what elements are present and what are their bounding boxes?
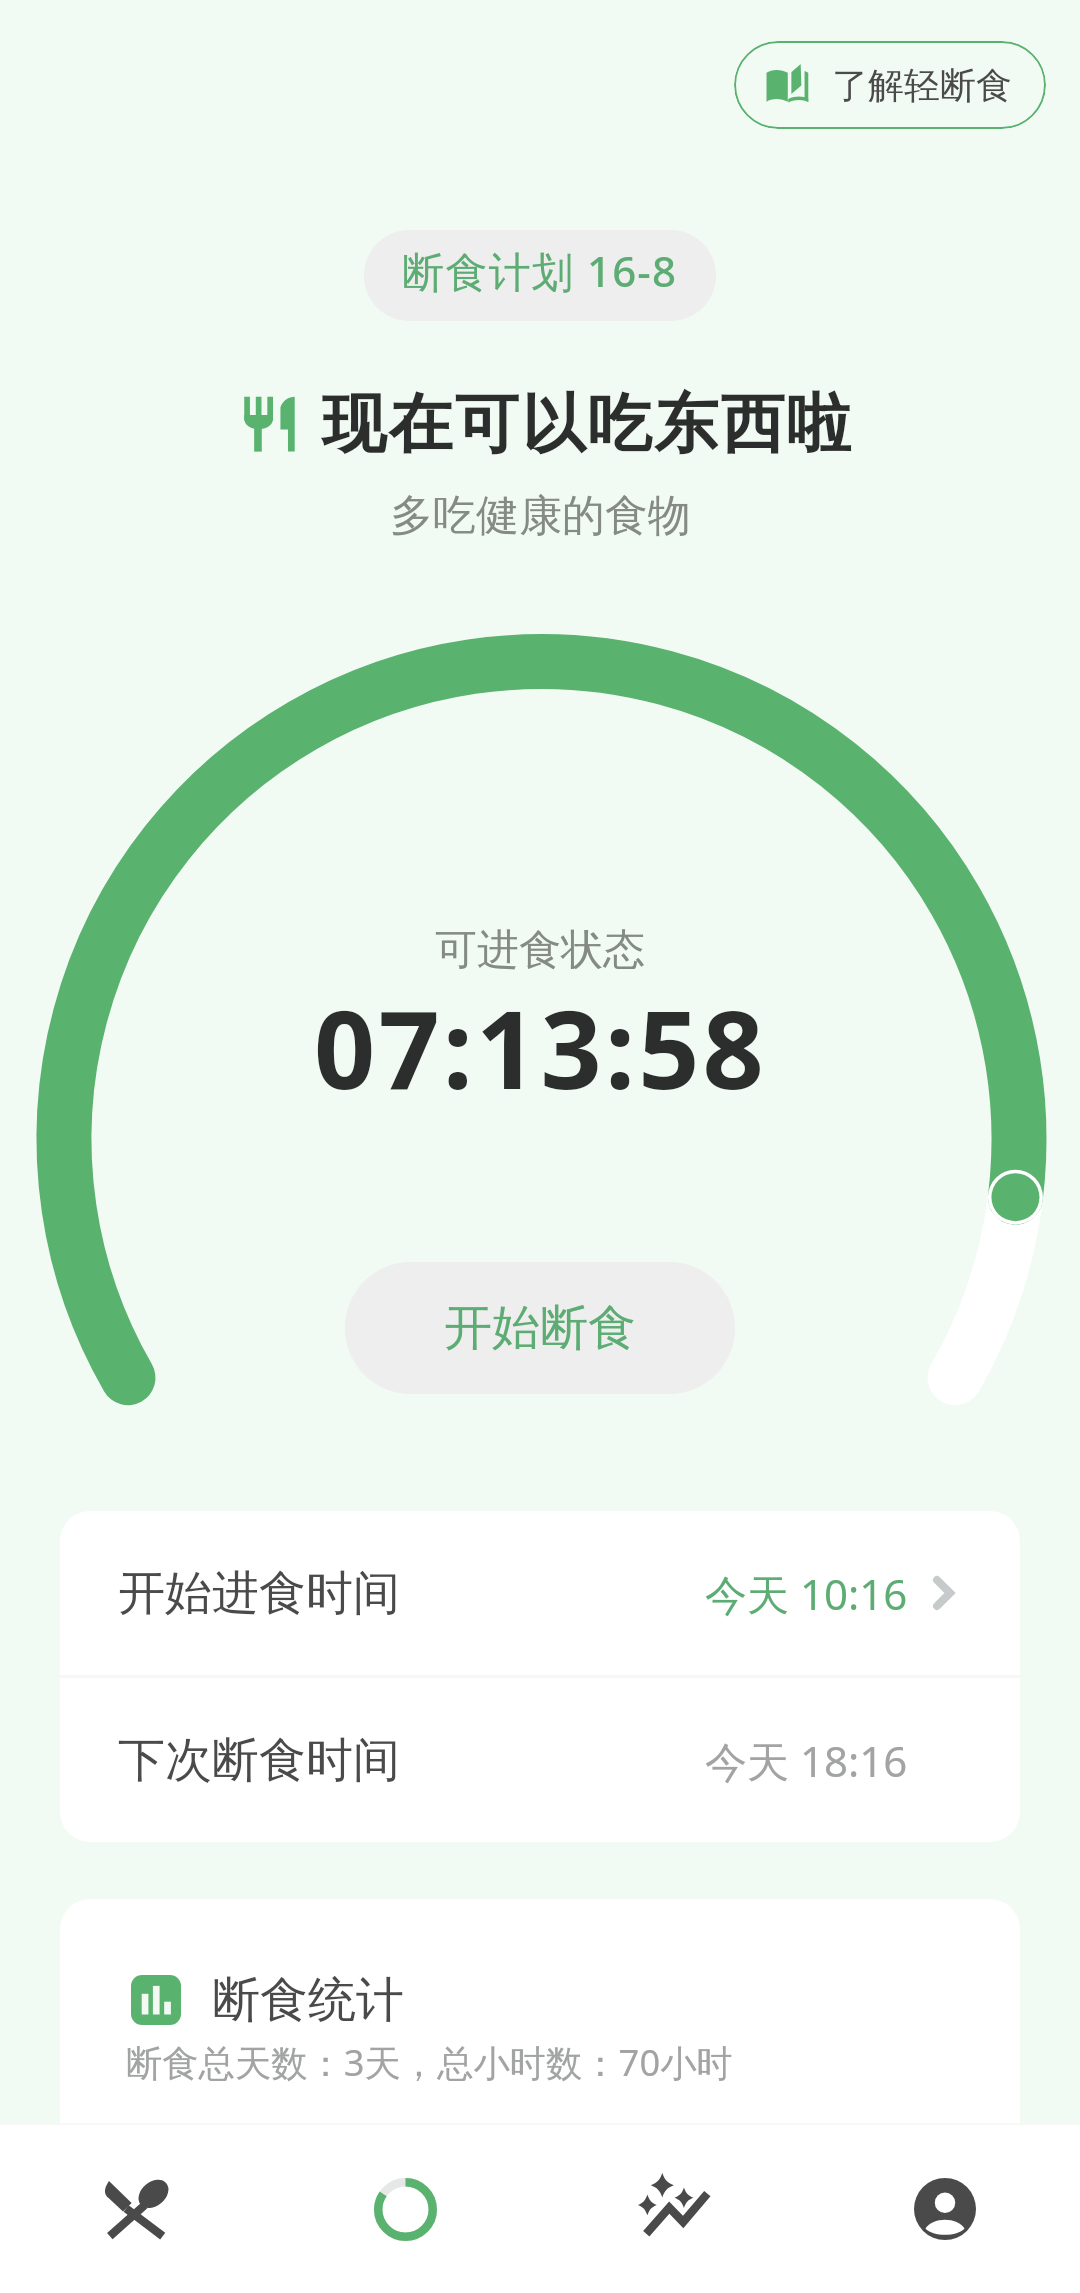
button[interactable]: 下次断食时间 — [60, 1678, 1020, 1842]
staticText: 开始进食时间 — [118, 1564, 400, 1623]
staticText: 下次断食时间 — [118, 1731, 400, 1790]
staticText: 今天 18:16 — [705, 1732, 908, 1789]
button[interactable]: Meals — [0, 2125, 270, 2293]
staticText: 断食计划 16-8 — [402, 242, 678, 299]
staticText: 开始断食 — [444, 1298, 636, 1358]
staticText: 今天 10:16 — [705, 1565, 908, 1622]
button[interactable]: 断食统计 — [60, 1899, 1020, 2229]
staticText: 断食总天数：3天，总小时数：70小时 — [126, 2037, 733, 2087]
staticText: 07:13:58 — [314, 975, 767, 1121]
staticText: 了解轻断食 — [832, 63, 1012, 108]
button[interactable]: 开始断食 — [345, 1262, 735, 1394]
button[interactable]: 断食计划 16-8 — [364, 230, 716, 321]
staticText: 可进食状态 — [435, 924, 645, 977]
button[interactable]: 了解轻断食 — [734, 41, 1046, 129]
button[interactable]: Profile — [810, 2125, 1080, 2293]
button[interactable]: Fasting — [270, 2125, 540, 2293]
staticText: 多吃健康的食物 — [390, 489, 691, 543]
button[interactable]: 开始进食时间 — [60, 1511, 1020, 1675]
staticText: 现在可以吃东西啦 — [322, 384, 854, 465]
staticText: 断食统计 — [212, 1970, 404, 2030]
button[interactable]: Insights — [540, 2125, 810, 2293]
